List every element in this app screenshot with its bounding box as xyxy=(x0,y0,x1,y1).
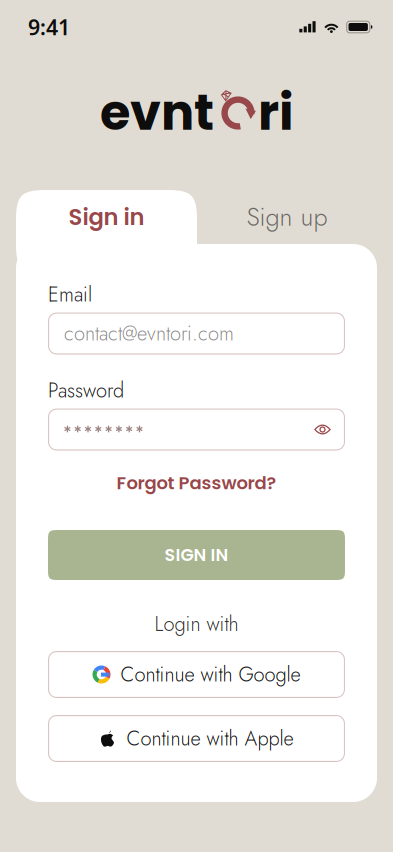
staticText: evnt xyxy=(100,78,214,147)
staticText: Email xyxy=(48,280,92,309)
staticText: Password xyxy=(48,376,124,405)
button[interactable]: Continue with Google xyxy=(48,651,345,698)
staticText: Sign up xyxy=(246,199,327,235)
staticText: SIGN IN xyxy=(164,543,228,567)
staticText: contact@evntori.com xyxy=(64,319,234,348)
button[interactable]: Show password xyxy=(314,423,331,436)
staticText: ri xyxy=(258,78,294,147)
staticText: Continue with Google xyxy=(120,660,300,689)
button[interactable]: Continue with Apple xyxy=(48,715,345,762)
button[interactable]: Sign up xyxy=(197,190,377,244)
staticText: Login with xyxy=(154,609,238,638)
button[interactable]: SIGN IN xyxy=(48,530,345,580)
staticText: Continue with Apple xyxy=(126,724,293,753)
button[interactable]: Forgot Password? xyxy=(48,472,345,494)
staticText: Forgot Password? xyxy=(116,470,276,496)
staticText: Sign in xyxy=(68,201,144,233)
button[interactable]: Sign in xyxy=(16,190,197,274)
staticText: 9:41 xyxy=(28,13,70,41)
